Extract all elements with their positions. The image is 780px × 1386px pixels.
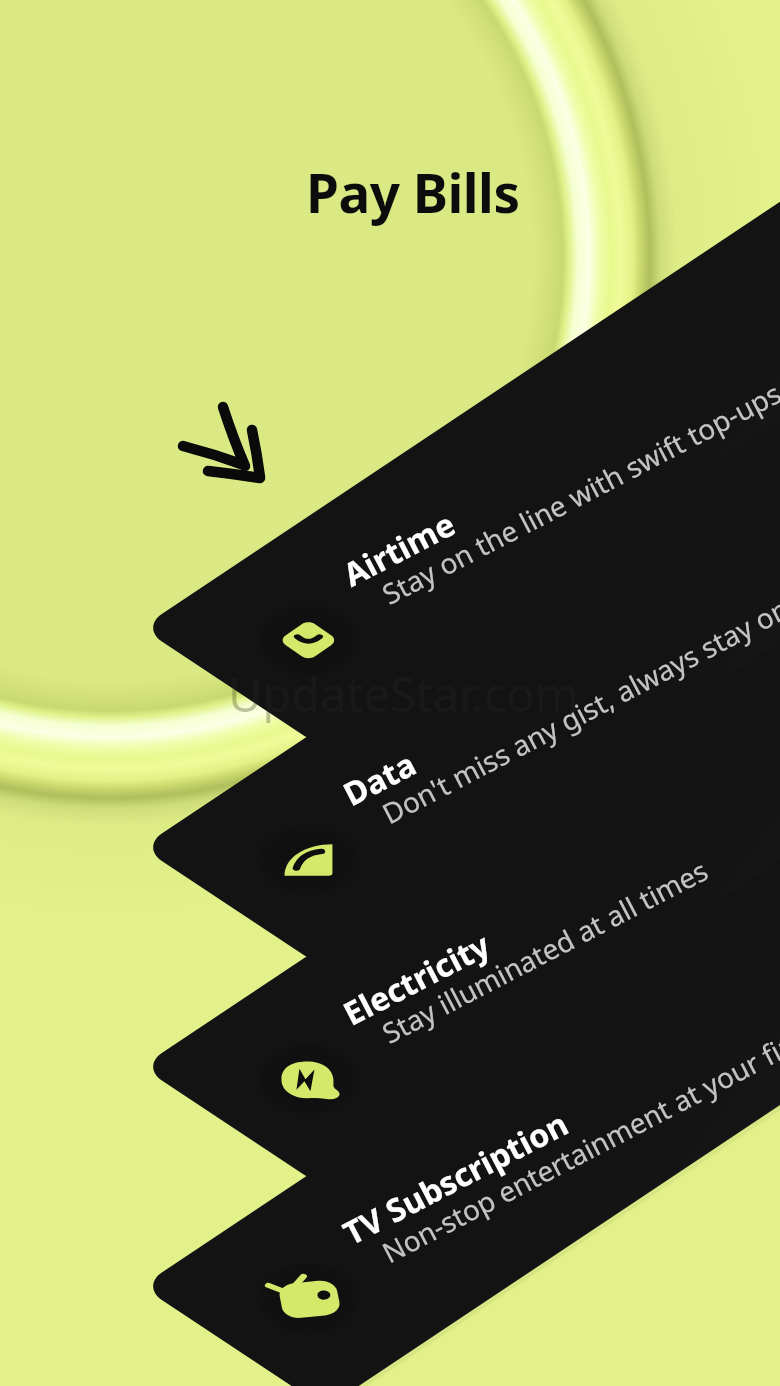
button[interactable]: Electricity xyxy=(160,989,780,1159)
button[interactable]: TV Subscription xyxy=(160,1209,780,1379)
button[interactable]: Data xyxy=(160,770,780,940)
button[interactable]: Airtime xyxy=(160,550,780,720)
